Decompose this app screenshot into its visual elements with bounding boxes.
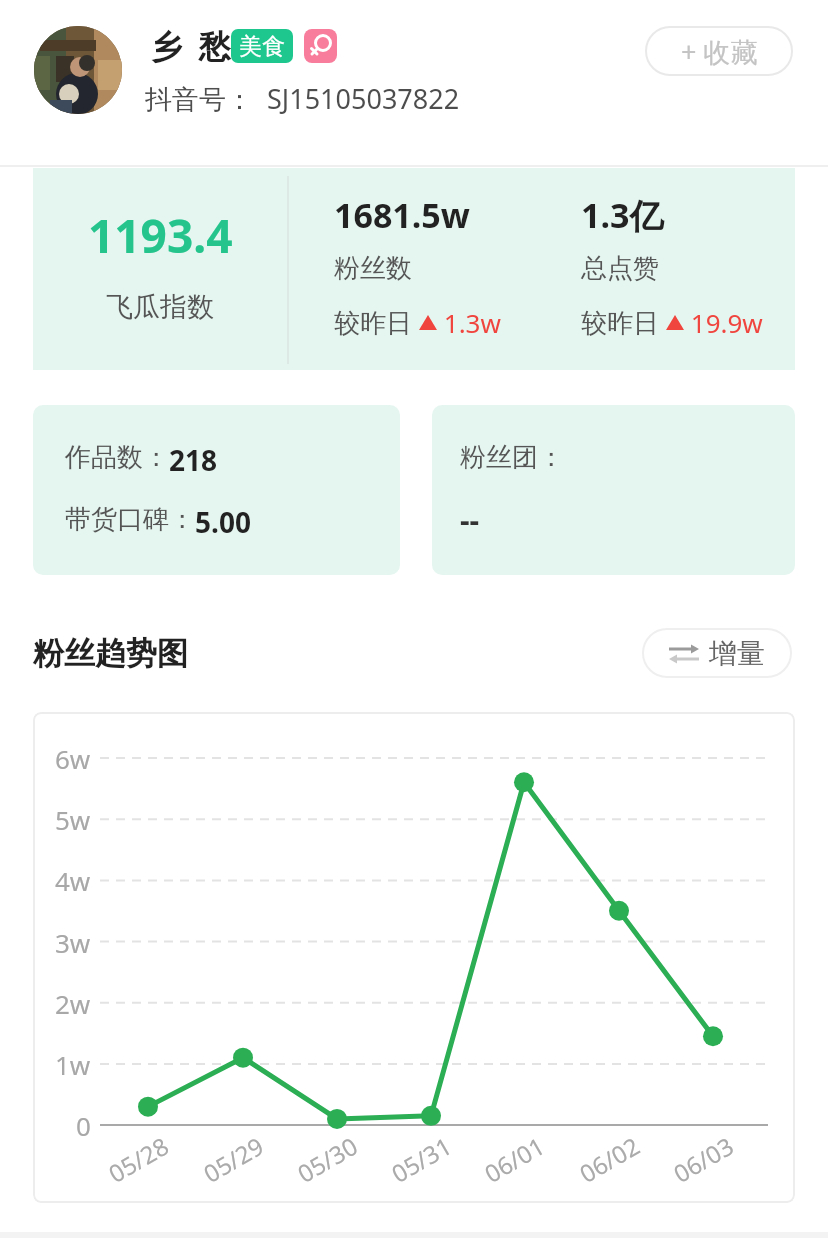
staticText: 2w [55,986,91,1020]
staticText: 粉丝趋势图 [33,634,188,673]
staticText: 带货口碑： [65,503,195,536]
staticText: 06/03 [667,1129,739,1190]
staticText: 1w [55,1047,91,1081]
staticText: 4w [55,863,91,897]
staticText: 05/28 [102,1129,174,1190]
button[interactable] [34,26,122,114]
staticText: 飞瓜指数 [106,290,214,324]
staticText: 3w [55,925,91,959]
staticText: 1.3亿 [581,192,664,238]
staticText: 乡 愁 [150,24,231,68]
staticText: 增量 [709,636,765,671]
staticText: 05/30 [291,1129,363,1190]
button[interactable]: + 收藏 [645,26,793,76]
button[interactable]: 美食 [231,29,293,63]
staticText: 06/01 [478,1129,550,1190]
staticText: 0 [76,1108,91,1142]
staticText: 5.00 [195,503,251,541]
staticText: 1681.5w [334,192,470,238]
staticText: -- [460,499,480,540]
staticText: 总点赞 [581,252,659,285]
staticText: 6w [55,741,91,775]
staticText: 较昨日 [581,304,666,340]
staticText: 06/02 [573,1129,645,1190]
staticText: 粉丝团： [460,441,564,474]
staticText: 较昨日 [334,304,419,340]
staticText: 作品数： [65,441,169,474]
staticText: 19.9w [684,305,763,340]
staticText: 美食 [239,32,285,61]
staticText: 218 [169,441,218,479]
button[interactable]: 作品数： [33,405,400,575]
button[interactable]: 粉丝团： [432,405,795,575]
button[interactable] [304,29,337,63]
staticText: 05/29 [197,1129,269,1190]
staticText: 5w [55,802,91,836]
button[interactable]: 增量 [642,628,792,678]
staticText: 粉丝数 [334,252,412,285]
staticText: 1.3w [437,305,501,340]
staticText: 05/31 [385,1129,457,1190]
staticText: + 收藏 [681,33,758,70]
staticText: 抖音号： SJ15105037822 [145,80,460,117]
staticText: 1193.4 [88,204,233,267]
